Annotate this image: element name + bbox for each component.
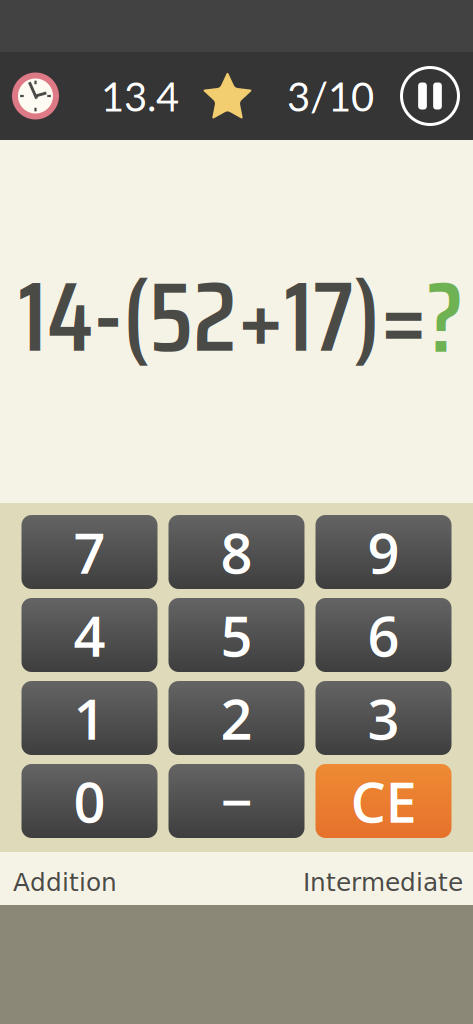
staticText: 8 [220, 514, 252, 590]
button[interactable]: 4 [21, 598, 157, 672]
staticText: 3 [367, 680, 399, 756]
staticText: 14-(52+17)= [18, 239, 427, 394]
staticText: 13.4 [101, 72, 179, 120]
button[interactable]: 5 [168, 598, 304, 672]
button[interactable]: 8 [168, 515, 304, 589]
button[interactable]: 9 [315, 515, 451, 589]
button[interactable]: − [168, 764, 304, 838]
staticText: 2 [220, 680, 252, 756]
staticText: Intermediate [303, 868, 463, 897]
button[interactable]: 7 [21, 515, 157, 589]
staticText: 5 [220, 597, 252, 673]
button[interactable]: 2 [168, 681, 304, 755]
staticText: CE [350, 763, 416, 839]
staticText: 9 [367, 514, 399, 590]
button[interactable]: CE [315, 764, 451, 838]
staticText: Addition [13, 868, 117, 897]
staticText: 0 [73, 763, 105, 839]
staticText: 6 [367, 597, 399, 673]
staticText: ? [427, 239, 464, 394]
staticText: 1 [73, 680, 105, 756]
staticText: 4 [73, 597, 105, 673]
staticText: − [220, 763, 252, 839]
button[interactable]: 0 [21, 764, 157, 838]
button[interactable]: 1 [21, 681, 157, 755]
staticText: 7 [73, 514, 105, 590]
button[interactable]: 3 [315, 681, 451, 755]
button[interactable]: 6 [315, 598, 451, 672]
button[interactable]: Pause [400, 66, 460, 126]
staticText: 3/10 [287, 72, 374, 120]
